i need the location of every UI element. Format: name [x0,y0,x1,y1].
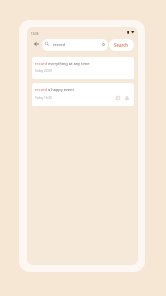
button[interactable]: record everything at any time [32,57,134,79]
button[interactable]: Clear [102,43,105,46]
button[interactable]: Search [109,39,134,51]
staticText: record [53,42,65,47]
staticText: record everything at any time [35,61,90,66]
button[interactable]: Image [115,95,120,100]
button[interactable]: Back [33,40,40,48]
staticText: Today 22:00 [35,69,52,73]
staticText: Search [114,42,129,48]
staticText: Today 16:30 [35,96,52,100]
staticText: 12:36 [31,32,39,36]
button[interactable]: Share [124,95,129,100]
button[interactable]: record a happy event [32,83,134,106]
button[interactable]: record [42,39,108,51]
staticText: record a happy event [35,87,74,92]
